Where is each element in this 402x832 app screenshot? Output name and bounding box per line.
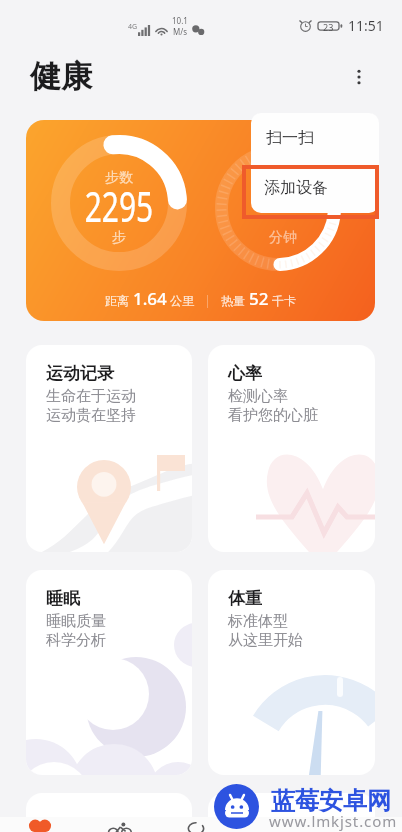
button[interactable]: Add device highlight (242, 165, 379, 219)
button[interactable]: Health (28, 817, 76, 832)
staticText: 运动记录 (46, 363, 114, 384)
staticText: 2295 (85, 178, 153, 234)
staticText: 分钟 (269, 229, 297, 247)
staticText: 看护您的心脏 (228, 406, 318, 425)
staticText: 10.1 (172, 15, 188, 26)
staticText: 健康 (30, 57, 92, 96)
staticText: 千卡 (269, 292, 297, 308)
button[interactable]: 运动记录 (26, 345, 192, 552)
staticText: 睡眠质量 (46, 612, 106, 631)
staticText: 23 (323, 21, 334, 33)
staticText: | (195, 292, 221, 308)
staticText: 生命在于运动 (46, 387, 136, 406)
staticText: 4G (128, 22, 138, 32)
staticText: 从这里开始 (228, 631, 303, 650)
staticText: 步数 (105, 169, 133, 187)
staticText: 公里 (167, 292, 195, 308)
staticText: 距离 (105, 292, 133, 308)
staticText: 热量 (221, 292, 249, 308)
staticText: 11:51 (348, 16, 384, 35)
staticText: 科学分析 (46, 631, 106, 650)
staticText: 添加设备 (264, 178, 328, 198)
staticText: 1.64 (133, 287, 167, 310)
staticText: M/s (173, 26, 188, 37)
staticText: 扫一扫 (266, 128, 314, 148)
button[interactable] (26, 793, 192, 832)
staticText: www.lmkjst.com (269, 811, 398, 831)
button[interactable]: More options (342, 60, 376, 94)
staticText: 运动贵在坚持 (46, 406, 136, 425)
button[interactable]: 扫一扫 (251, 113, 379, 163)
button[interactable]: 心率 (208, 345, 375, 552)
button[interactable]: 添加设备 (251, 163, 379, 213)
button[interactable] (208, 793, 375, 832)
staticText: 52 (249, 287, 269, 310)
staticText: 标准体型 (228, 612, 288, 631)
button[interactable]: History (176, 817, 224, 832)
staticText: 睡眠 (46, 588, 80, 609)
staticText: 步 (112, 229, 126, 247)
staticText: 体重 (228, 588, 262, 609)
staticText: 心率 (228, 363, 262, 384)
button[interactable]: 体重 (208, 570, 375, 775)
button[interactable]: 分钟 (26, 120, 375, 321)
staticText: 蓝莓安卓网 (271, 786, 391, 816)
button[interactable]: 睡眠 (26, 570, 192, 775)
button[interactable]: Exercise (100, 817, 148, 832)
staticText: 检测心率 (228, 387, 288, 406)
